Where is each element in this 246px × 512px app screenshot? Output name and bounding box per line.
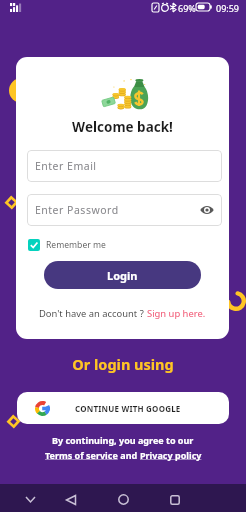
staticText: Enter Password (35, 203, 119, 217)
staticText: CONTINUE WITH GOOGLE (75, 403, 181, 414)
button[interactable]: Terms of service (45, 449, 118, 461)
staticText: Welcome back! (16, 118, 229, 136)
staticText: 09:59 (216, 2, 240, 14)
staticText: Enter Email (35, 159, 97, 173)
staticText: and (118, 449, 140, 461)
staticText: Remember me (46, 239, 106, 251)
button[interactable]: Back (58, 487, 83, 512)
button[interactable]: Hide keyboard (18, 487, 43, 512)
button[interactable]: CONTINUE WITH GOOGLE (17, 392, 229, 424)
button[interactable]: Enter Password (27, 194, 222, 226)
staticText: 69% (178, 2, 196, 14)
button[interactable]: Privacy policy (140, 449, 202, 461)
button[interactable]: Enter Email (27, 150, 222, 182)
staticText: Don't have an account ? (39, 307, 144, 320)
button[interactable]: Remember me (28, 239, 106, 251)
staticText: Or login using (0, 354, 246, 374)
button[interactable]: Sign up here. (147, 307, 206, 320)
button[interactable]: Recent apps (162, 487, 187, 512)
staticText: By continuing, you agree to our (52, 434, 194, 446)
button[interactable]: Login (44, 261, 201, 289)
button[interactable]: Home (111, 487, 136, 512)
button[interactable]: Show password (200, 203, 214, 217)
staticText: Login (107, 268, 138, 283)
